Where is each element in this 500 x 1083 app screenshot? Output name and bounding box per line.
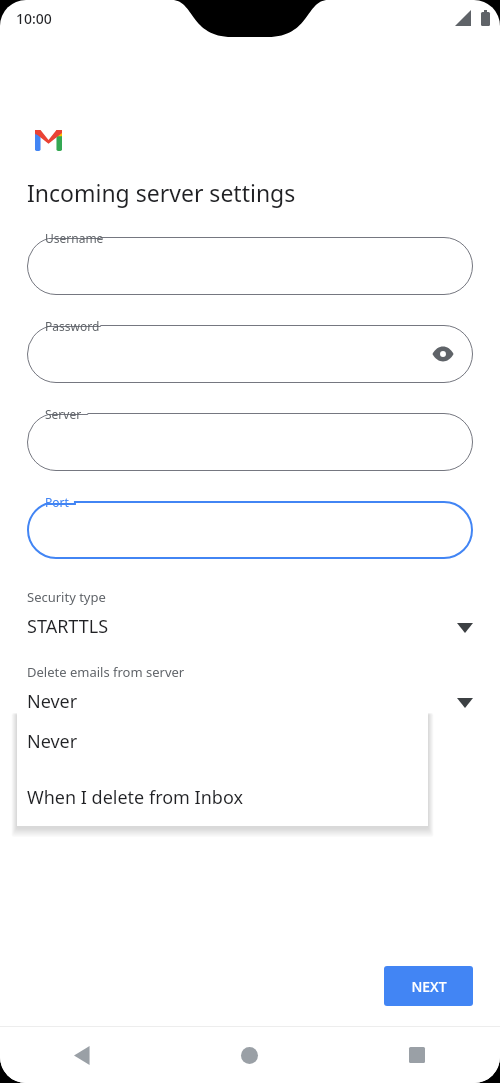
staticText: Delete emails from server [27, 663, 185, 681]
button[interactable]: Never [17, 713, 428, 769]
staticText: Server [45, 406, 82, 422]
staticText: Never [27, 689, 78, 714]
button[interactable]: Username [27, 237, 473, 295]
button[interactable]: Recent apps [333, 1027, 500, 1083]
staticText: Password [45, 318, 100, 334]
button[interactable]: Password [27, 325, 473, 383]
staticText: Username [45, 230, 104, 246]
button[interactable]: NEXT [384, 966, 473, 1006]
staticText: NEXT [411, 977, 447, 996]
staticText: STARTTLS [27, 614, 109, 639]
staticText: Incoming server settings [27, 177, 296, 208]
staticText: Port [45, 494, 69, 510]
button[interactable]: Delete emails from server [27, 663, 473, 714]
staticText: Never [27, 729, 78, 754]
button[interactable]: Port [27, 501, 473, 559]
staticText: 10:00 [16, 9, 52, 28]
staticText: Security type [27, 588, 106, 606]
button[interactable]: Back [0, 1027, 166, 1083]
button[interactable]: Home [166, 1027, 333, 1083]
button[interactable]: Show password [429, 340, 457, 368]
button[interactable]: When I delete from Inbox [17, 769, 428, 826]
button[interactable]: Security type [27, 588, 473, 639]
staticText: When I delete from Inbox [27, 785, 243, 810]
button[interactable]: Server [27, 413, 473, 471]
